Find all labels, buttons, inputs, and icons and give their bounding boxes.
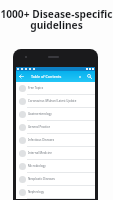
staticText: Neoplastic Diseases (28, 177, 55, 181)
staticText: Infectious Diseases (28, 138, 55, 142)
staticText: Microbiology (28, 164, 46, 168)
staticText: Internal Medicine (28, 151, 52, 155)
button[interactable]: Neoplastic Diseases (16, 173, 95, 185)
staticText: Gastroenterology (28, 112, 52, 116)
button[interactable]: Free Topics (16, 82, 95, 94)
button[interactable]: Microbiology (16, 160, 95, 172)
button[interactable]: Back (16, 71, 27, 82)
button[interactable]: Gastroenterology (16, 108, 95, 120)
button[interactable]: Search (84, 71, 95, 82)
button[interactable]: Coronavirus (Wuhan) Latest Update (16, 95, 95, 107)
button[interactable]: Internal Medicine (16, 147, 95, 159)
button[interactable]: General Practice (16, 121, 95, 133)
staticText: Table of Contents (31, 74, 62, 79)
staticText: Free Topics (28, 86, 44, 90)
staticText: 1000+ Disease-specific guidelines (0, 7, 113, 32)
staticText: Coronavirus (Wuhan) Latest Update (28, 99, 77, 103)
staticText: General Practice (28, 125, 51, 129)
staticText: Nephrology (28, 190, 45, 194)
button[interactable]: Infectious Diseases (16, 134, 95, 146)
button[interactable]: Nephrology (16, 186, 95, 198)
button[interactable]: More options (76, 73, 84, 81)
